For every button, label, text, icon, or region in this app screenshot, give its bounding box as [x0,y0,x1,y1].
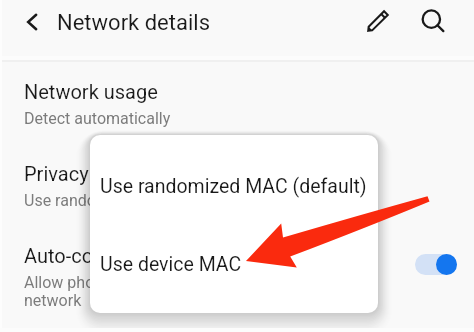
button[interactable]: Privacy [0,150,474,212]
button[interactable]: Back [13,3,50,40]
staticText: Detect automatically [24,109,171,128]
button[interactable]: Edit [359,2,396,39]
button[interactable]: Auto-connect [0,232,474,318]
staticText: Use device MAC [100,253,242,276]
button[interactable]: Use randomized MAC (default) [90,146,378,226]
staticText: Privacy [24,162,89,185]
button[interactable]: Network usage [0,68,474,130]
button[interactable]: Auto-connect toggle [407,246,465,282]
staticText: Use randomized MAC (default) [100,175,367,198]
staticText: Allow phone to connect to this network [24,273,240,310]
button[interactable]: Search [414,2,451,39]
staticText: Network usage [24,80,158,103]
button[interactable]: Use device MAC [90,224,378,304]
staticText: Network details [57,10,210,36]
staticText: Auto-connect [24,244,143,267]
staticText: Use randomized MAC [24,191,178,210]
